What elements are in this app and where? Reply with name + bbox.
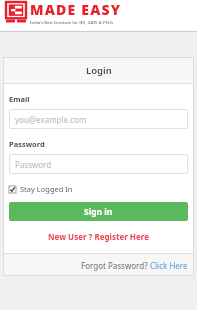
button[interactable]: Password — [9, 154, 188, 174]
button[interactable]: Stay Logged In checkbox — [9, 183, 73, 195]
staticText: Stay Logged In — [20, 184, 73, 194]
staticText: Password — [9, 139, 45, 149]
button[interactable]: New User ? Register Here — [9, 231, 188, 242]
staticText: New User ? Register Here — [48, 231, 149, 242]
staticText: Password — [15, 159, 52, 170]
other: MADE EASY logo — [6, 2, 26, 24]
staticText: Email — [9, 94, 30, 104]
other: Stay Logged In checkbox — [9, 186, 16, 193]
staticText: Sign in — [84, 206, 113, 218]
staticText: Forgot Password? — [81, 260, 150, 271]
staticText: MADE EASY — [30, 0, 122, 19]
staticText: Click Here — [150, 260, 188, 271]
staticText: India's Best Institute for IES, GATE & P… — [30, 20, 113, 26]
button[interactable]: Sign in — [9, 202, 188, 221]
staticText: you@example.com — [15, 114, 87, 125]
button[interactable]: Click Here — [150, 260, 188, 271]
staticText: Login — [86, 64, 112, 77]
button[interactable]: you@example.com — [9, 109, 188, 129]
